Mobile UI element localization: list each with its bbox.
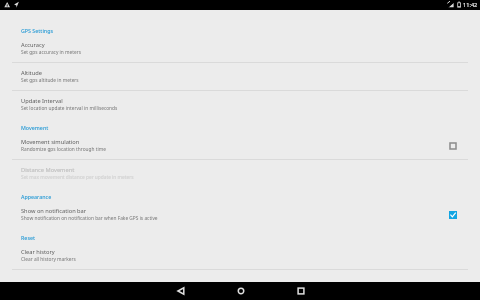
staticText: Altitude — [21, 69, 42, 77]
staticText: Set max movement distance per update in … — [21, 174, 134, 181]
button[interactable]: Movement simulation — [0, 132, 480, 159]
staticText: Clear all history markers — [21, 256, 76, 263]
staticText: Randomize gps location through time — [21, 146, 106, 153]
button[interactable]: Update Interval — [0, 91, 480, 118]
staticText: Reset — [21, 234, 36, 241]
staticText: Movement — [21, 124, 49, 131]
staticText: Set location update interval in millisec… — [21, 105, 118, 112]
button[interactable]: Show on notification bar — [0, 201, 480, 228]
button[interactable]: Clear history — [0, 242, 480, 269]
staticText: Distance Movement — [21, 166, 75, 174]
staticText: Movement simulation — [21, 138, 80, 146]
staticText: Clear history — [21, 248, 55, 256]
staticText: Update Interval — [21, 97, 63, 105]
button[interactable]: Checked — [449, 211, 457, 219]
staticText: GPS Settings — [21, 27, 53, 34]
staticText: 11:42 — [463, 1, 478, 9]
button[interactable]: Accuracy — [0, 35, 480, 62]
button[interactable]: Distance Movement — [0, 160, 480, 187]
button[interactable]: Altitude — [0, 63, 480, 90]
staticText: Set gps altitude in meters — [21, 77, 79, 84]
button[interactable]: Home — [225, 282, 256, 300]
button[interactable]: Back — [165, 282, 196, 300]
staticText: Appearance — [21, 193, 52, 200]
button[interactable]: Unchecked — [449, 142, 457, 150]
staticText: Show notification on notification bar wh… — [21, 215, 158, 222]
button[interactable]: Recent apps — [285, 282, 316, 300]
staticText: Set gps accuracy in meters — [21, 49, 81, 56]
staticText: Show on notification bar — [21, 207, 87, 215]
staticText: Accuracy — [21, 41, 45, 49]
